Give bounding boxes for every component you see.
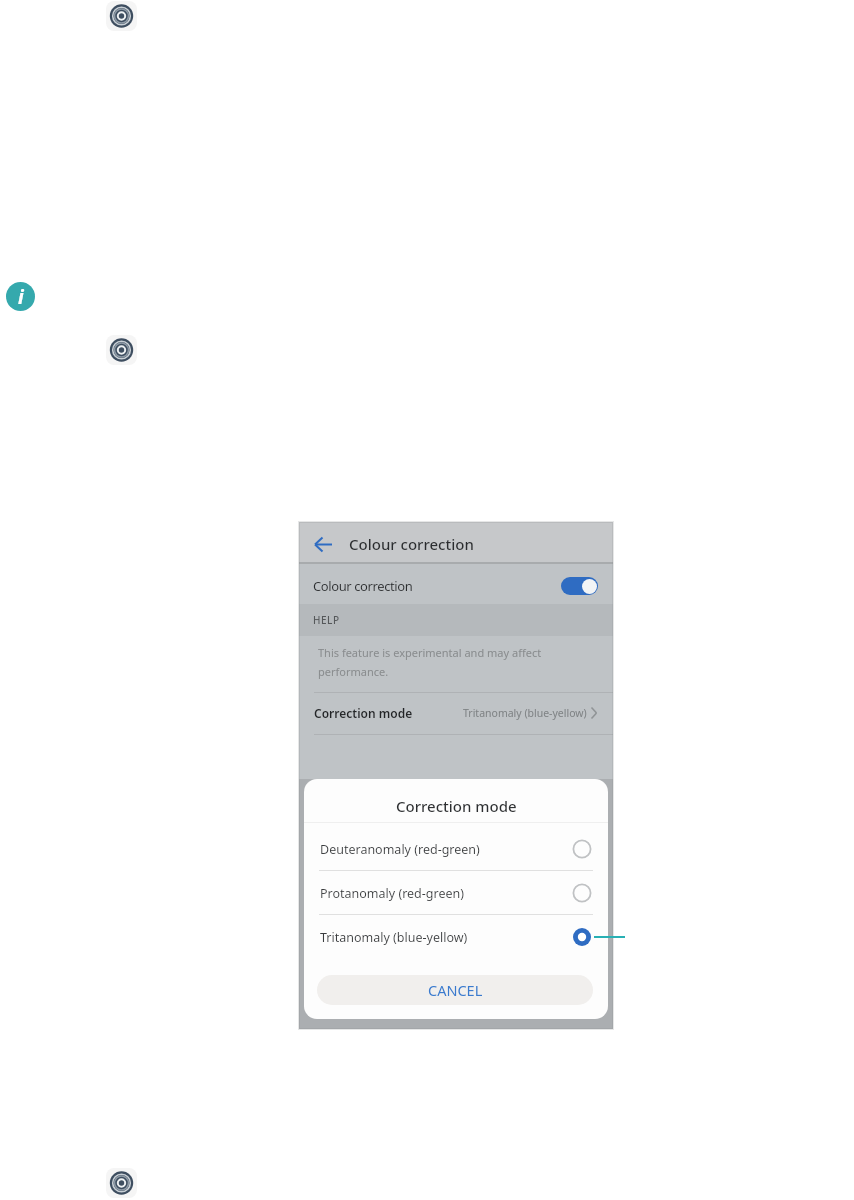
button[interactable]: i [6,282,35,311]
button[interactable] [106,335,137,365]
staticText: HELP [313,613,340,627]
staticText: CANCEL [428,980,483,1000]
staticText: Protanomaly (red-green) [320,885,465,902]
staticText: Deuteranomaly (red-green) [320,841,480,858]
button[interactable]: Tritanomaly (blue-yellow) [304,916,608,958]
button[interactable]: Colour correction [299,564,613,605]
button[interactable]: CANCEL [317,975,593,1005]
button[interactable]: Protanomaly (red-green) [304,872,608,914]
staticText: Colour correction [313,577,413,595]
button[interactable]: Correction mode [299,693,613,734]
staticText: Correction mode [396,796,517,816]
button[interactable] [106,1168,137,1198]
staticText: Tritanomaly (blue-yellow) [463,706,587,720]
staticText: This feature is experimental and may aff… [318,645,542,660]
staticText: i [18,284,24,310]
staticText: performance. [318,664,389,679]
button[interactable]: Deuteranomaly (red-green) [304,828,608,870]
staticText: Correction mode [314,705,413,721]
staticText: Colour correction [349,534,474,554]
button[interactable] [106,1,137,31]
staticText: Tritanomaly (blue-yellow) [320,929,468,946]
button[interactable] [561,577,598,595]
